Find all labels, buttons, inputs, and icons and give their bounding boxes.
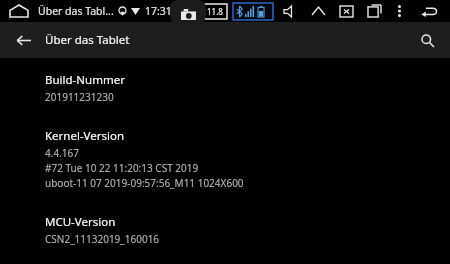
staticText: uboot-11 07 2019-09:57:56_M11 1024X600	[45, 176, 244, 190]
staticText: 201911231230	[45, 90, 114, 104]
button[interactable]: Volume	[281, 2, 299, 20]
staticText: Build-Nummer	[45, 72, 125, 88]
staticText: Über das Tabl...	[38, 4, 114, 18]
button[interactable]: MCU-Version	[45, 212, 450, 249]
button[interactable]: Back	[418, 0, 440, 22]
button[interactable]: Navigate up	[10, 27, 36, 53]
button[interactable]: Build-Nummer	[45, 70, 450, 107]
staticText: #72 Tue 10 22 11:20:13 CST 2019	[45, 161, 199, 175]
button[interactable]: More options	[392, 4, 406, 18]
staticText: 11.8	[207, 6, 223, 17]
button[interactable]: Eject	[309, 2, 327, 20]
button[interactable]: Recent apps	[365, 2, 383, 20]
staticText: CSN2_11132019_160016	[45, 232, 160, 246]
staticText: Über das Tablet	[45, 32, 130, 48]
staticText: 4.4.167	[45, 146, 79, 160]
button[interactable]: Home	[6, 0, 32, 22]
staticText: 17:31	[145, 4, 172, 18]
button[interactable]: Search	[414, 27, 440, 53]
staticText: MCU-Version	[45, 214, 116, 230]
button[interactable]: Camera	[170, 0, 206, 28]
staticText: Kernel-Version	[45, 128, 125, 144]
button[interactable]: Kernel-Version	[45, 126, 450, 193]
button[interactable]: Close	[337, 2, 355, 20]
